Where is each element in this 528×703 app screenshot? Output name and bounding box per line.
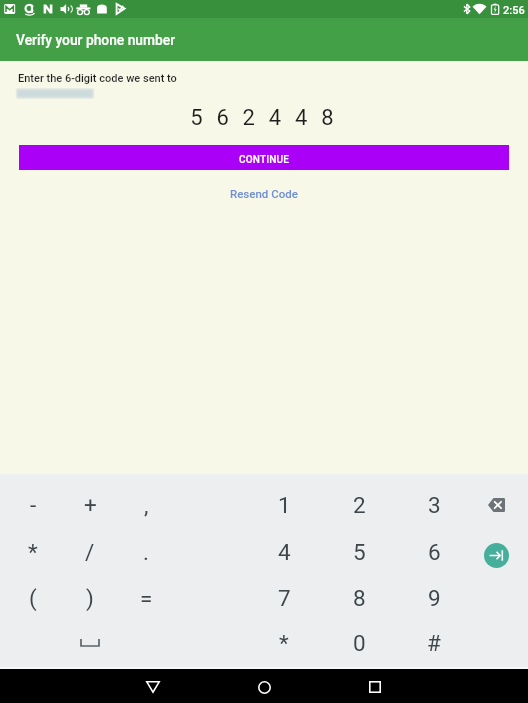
button[interactable]: 8 (332, 576, 386, 620)
staticText: CONTINUE (239, 154, 290, 166)
staticText: 8 (353, 585, 366, 611)
staticText: Enter the 6-digit code we sent to (18, 72, 177, 85)
button[interactable]: = (119, 576, 173, 620)
button[interactable]: 1 (257, 483, 311, 527)
staticText: . (143, 539, 149, 565)
staticText: 3 (428, 492, 441, 518)
button[interactable]: * (257, 621, 311, 665)
button[interactable]: Space (62, 621, 118, 665)
button[interactable]: / (63, 530, 117, 574)
staticText: 4 (278, 539, 291, 565)
staticText: 5 6 2 4 4 8 (0, 105, 528, 131)
staticText: # (427, 630, 441, 656)
staticText: + (84, 492, 97, 518)
button[interactable]: , (119, 483, 173, 527)
button[interactable]: Back (131, 670, 175, 703)
staticText: 9 (428, 585, 441, 611)
button[interactable]: 3 (407, 483, 461, 527)
staticText: 0 (353, 630, 366, 656)
button[interactable]: . (119, 530, 173, 574)
button[interactable]: 2 (332, 483, 386, 527)
staticText: 2 (353, 492, 366, 518)
button[interactable]: ) (63, 576, 117, 620)
button[interactable]: * (6, 530, 60, 574)
staticText: Verify your phone number (16, 32, 176, 48)
staticText: * (28, 539, 38, 565)
staticText: 5 (353, 539, 366, 565)
button[interactable]: 5 (332, 530, 386, 574)
button[interactable]: # (407, 621, 461, 665)
staticText: 6 (428, 539, 441, 565)
button[interactable]: - (6, 483, 60, 527)
staticText: 2:56 (503, 4, 525, 17)
button[interactable]: 9 (407, 576, 461, 620)
staticText: 1 (278, 492, 291, 518)
button[interactable]: 0 (332, 621, 386, 665)
button[interactable]: 4 (257, 530, 311, 574)
button[interactable]: + (63, 483, 117, 527)
button[interactable]: ( (6, 576, 60, 620)
button[interactable]: Resend Code (220, 184, 308, 203)
staticText: - (30, 492, 37, 518)
staticText: , (144, 492, 149, 518)
staticText: * (279, 630, 289, 656)
staticText: ) (86, 585, 94, 611)
button[interactable]: Recent apps (353, 670, 397, 703)
staticText: = (140, 585, 153, 611)
button[interactable]: CONTINUE (19, 145, 509, 170)
staticText: ( (29, 585, 37, 611)
button[interactable]: 7 (257, 576, 311, 620)
button[interactable]: Home (242, 670, 286, 703)
staticText: / (85, 539, 95, 565)
button[interactable]: 6 (407, 530, 461, 574)
button[interactable]: Backspace (474, 483, 518, 527)
staticText: 7 (278, 585, 291, 611)
button[interactable]: Enter (474, 533, 518, 577)
